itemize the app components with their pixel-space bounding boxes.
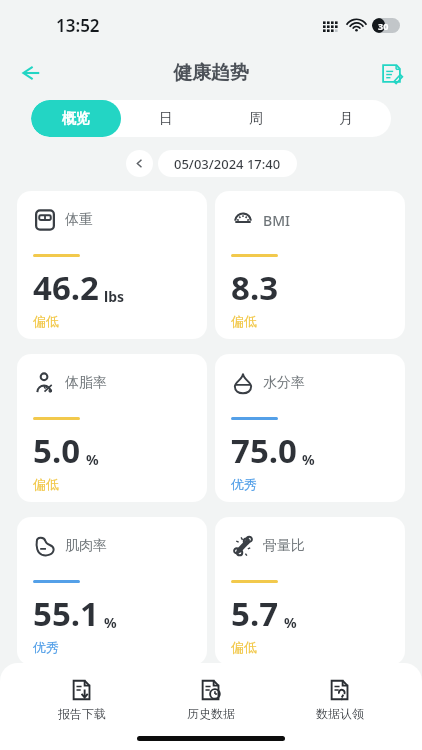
staticText: 周 (249, 110, 263, 128)
staticText: 水分率 (263, 374, 305, 392)
button[interactable]: 报告下载 (35, 677, 129, 723)
button[interactable]: 体重 (17, 191, 207, 339)
button[interactable]: 月 (301, 100, 391, 137)
button[interactable]: Back (8, 51, 52, 95)
staticText: 5.7 (231, 591, 279, 636)
staticText: 报告下载 (58, 706, 106, 721)
staticText: 体脂率 (65, 374, 107, 392)
button[interactable]: Edit report (370, 52, 412, 94)
staticText: 30 (378, 20, 389, 32)
staticText: 健康趋势 (173, 61, 249, 85)
staticText: BMI (263, 211, 290, 230)
button[interactable]: BMI (215, 191, 405, 339)
staticText: 优秀 (33, 639, 59, 655)
staticText: 肌肉率 (65, 537, 107, 555)
staticText: 55.1 (33, 591, 99, 636)
staticText: lbs (104, 287, 125, 306)
button[interactable]: 骨量比 (215, 517, 405, 665)
staticText: 5.0 (33, 428, 81, 473)
staticText: 历史数据 (187, 706, 235, 721)
staticText: 13:52 (56, 14, 100, 37)
staticText: 体重 (65, 211, 93, 229)
staticText: 05/03/2024 17:40 (174, 155, 281, 173)
staticText: 46.2 (33, 265, 99, 310)
button[interactable]: 日 (121, 100, 211, 137)
staticText: % (284, 613, 297, 632)
button[interactable]: 周 (211, 100, 301, 137)
staticText: 日 (159, 110, 173, 128)
staticText: 优秀 (231, 476, 257, 492)
button[interactable]: 肌肉率 (17, 517, 207, 665)
button[interactable]: 体脂率 (17, 354, 207, 502)
button[interactable]: 历史数据 (164, 677, 258, 723)
staticText: 概览 (62, 110, 90, 128)
staticText: 偏低 (231, 313, 257, 329)
button[interactable]: 数据认领 (293, 677, 387, 723)
staticText: % (86, 450, 99, 469)
staticText: 数据认领 (316, 706, 364, 721)
button[interactable]: 水分率 (215, 354, 405, 502)
staticText: 偏低 (33, 476, 59, 492)
staticText: 偏低 (33, 313, 59, 329)
staticText: 75.0 (231, 428, 297, 473)
button[interactable]: 概览 (31, 100, 121, 137)
button[interactable]: 05/03/2024 17:40 (158, 150, 297, 177)
staticText: 月 (339, 110, 353, 128)
staticText: 偏低 (231, 639, 257, 655)
staticText: 8.3 (231, 265, 279, 310)
staticText: % (104, 613, 117, 632)
button[interactable]: Previous (126, 150, 153, 177)
staticText: 骨量比 (263, 537, 305, 555)
staticText: % (302, 450, 315, 469)
